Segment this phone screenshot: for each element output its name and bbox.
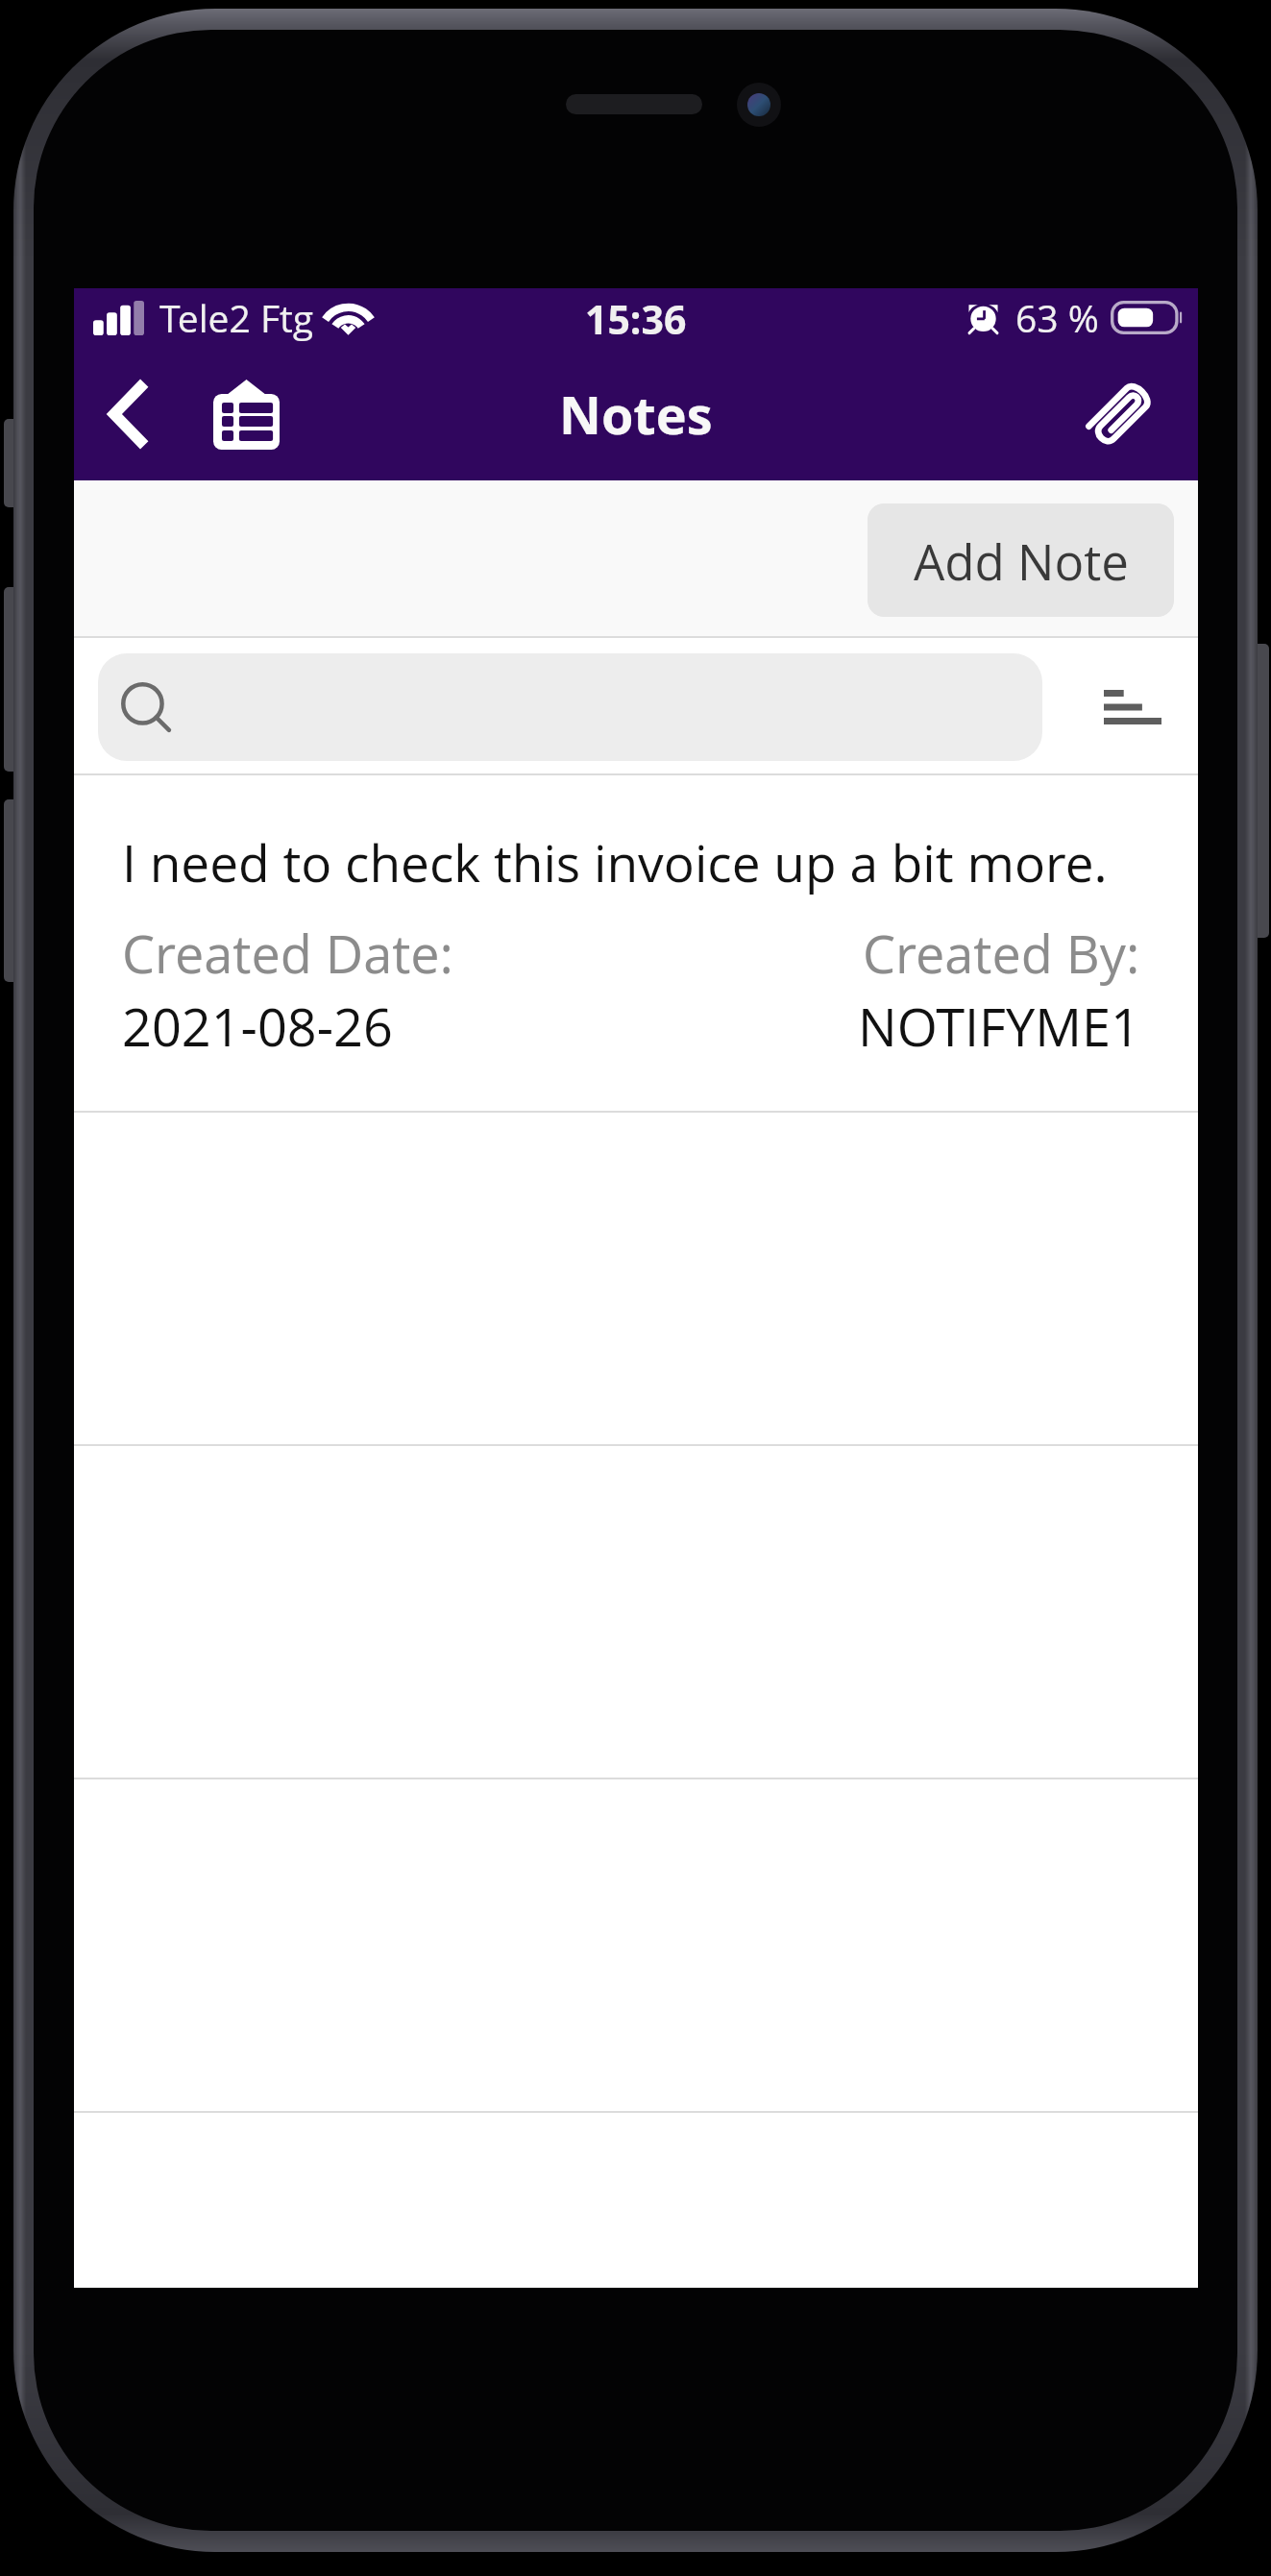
staticText: Created By: [863, 918, 1140, 989]
button[interactable]: Back [84, 362, 170, 466]
staticText: 2021-08-26 [122, 991, 393, 1062]
staticText: I need to check this invoice up a bit mo… [122, 827, 1108, 896]
staticText: Created Date: [122, 918, 453, 989]
staticText: Add Note [914, 527, 1129, 594]
staticText: 63 % [1015, 292, 1099, 343]
staticText: 15:36 [585, 292, 687, 346]
button[interactable] [98, 653, 1042, 761]
button[interactable]: Attach file [1072, 363, 1168, 463]
button[interactable] [74, 1779, 1198, 2113]
staticText: Tele2 Ftg [159, 292, 314, 343]
button[interactable]: Open list view [191, 362, 301, 466]
staticText: Notes [559, 379, 713, 450]
button[interactable]: I need to check this invoice up a bit mo… [74, 775, 1198, 1113]
button[interactable]: Add Note [868, 503, 1174, 617]
button[interactable]: Sort [1092, 667, 1173, 748]
staticText: NOTIFYME1 [858, 991, 1140, 1062]
